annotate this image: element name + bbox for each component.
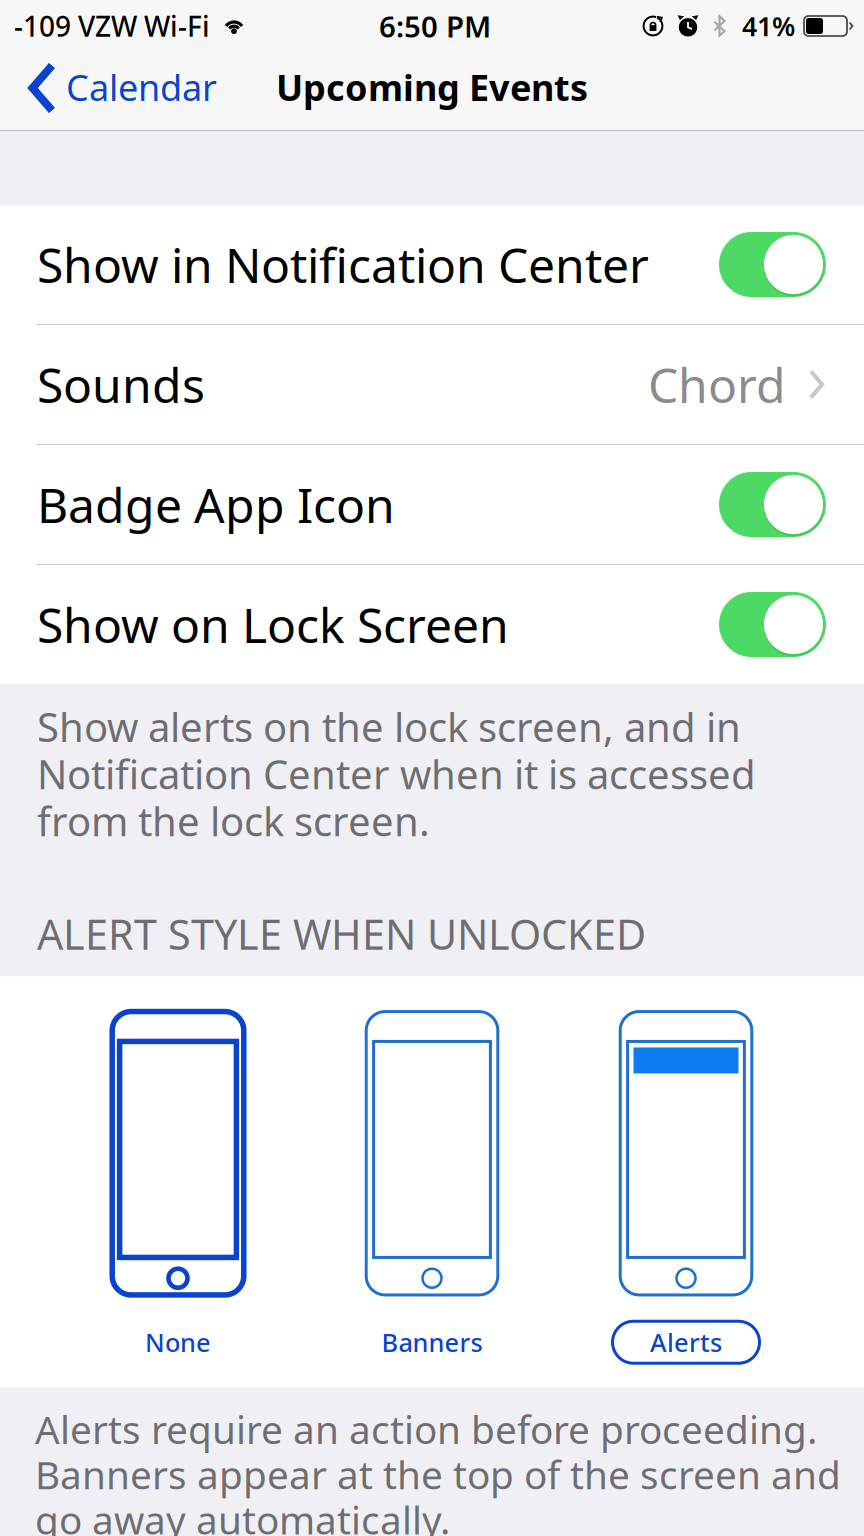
button[interactable]: Show on Lock Screen xyxy=(0,565,864,684)
button[interactable]: Banners xyxy=(364,1007,500,1363)
staticText: Show alerts on the lock screen, and in N… xyxy=(37,700,756,847)
staticText: Sounds xyxy=(37,353,205,416)
staticText: Banners xyxy=(381,1325,482,1359)
staticText: Alerts require an action before proceedi… xyxy=(35,1403,841,1536)
staticText: Calendar xyxy=(66,63,217,111)
staticText: Badge App Icon xyxy=(37,473,395,536)
staticText: Alerts xyxy=(650,1325,722,1359)
button[interactable]: None xyxy=(110,1007,246,1363)
staticText: -109 VZW Wi-Fi xyxy=(14,7,210,45)
staticText: Show on Lock Screen xyxy=(37,593,509,656)
staticText: Upcoming Events xyxy=(276,63,588,111)
staticText: None xyxy=(145,1325,211,1359)
button[interactable]: Sounds xyxy=(0,325,864,444)
button[interactable]: Show in Notification Center xyxy=(0,205,864,324)
staticText: ALERT STYLE WHEN UNLOCKED xyxy=(37,906,646,961)
button[interactable]: Calendar xyxy=(0,52,233,130)
button[interactable]: Alerts xyxy=(618,1007,754,1363)
button[interactable]: Badge App Icon xyxy=(0,445,864,564)
staticText: Show in Notification Center xyxy=(37,233,649,296)
staticText: Chord xyxy=(648,353,786,416)
staticText: 6:50 PM xyxy=(379,6,491,45)
staticText: 41% xyxy=(742,8,795,44)
